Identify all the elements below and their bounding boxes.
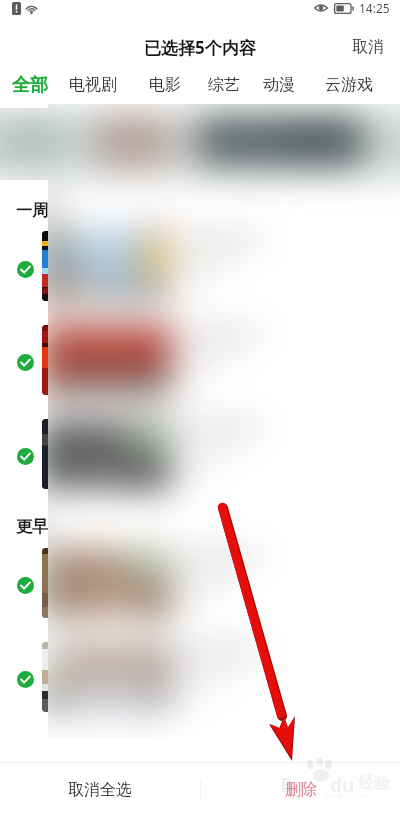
- staticText: 删除: [285, 780, 317, 800]
- staticText: 更早: [16, 517, 48, 537]
- staticText: jingyan.baidu.com: [290, 789, 368, 801]
- staticText: 经验: [358, 773, 390, 793]
- button[interactable]: 取消全选: [0, 763, 200, 816]
- button[interactable]: Selected: [17, 354, 34, 371]
- staticText: 一周内: [16, 201, 64, 221]
- button[interactable]: Selected: [17, 671, 34, 688]
- button[interactable]: Selected: [17, 261, 34, 278]
- staticText: 更早: [16, 517, 48, 537]
- staticText: 电影: [149, 75, 181, 95]
- button[interactable]: Selected: [17, 448, 34, 465]
- button[interactable]: Selected: [17, 671, 34, 688]
- button[interactable]: 取消: [336, 28, 400, 66]
- button[interactable]: 删除: [201, 763, 400, 816]
- button[interactable]: Selected: [17, 577, 34, 594]
- button[interactable]: Selected: [17, 671, 34, 688]
- staticText: 14:25: [359, 0, 390, 16]
- staticText: Ba: [280, 772, 305, 798]
- button[interactable]: 动漫: [253, 66, 305, 104]
- button[interactable]: Selected: [17, 261, 34, 278]
- button[interactable]: Selected: [17, 577, 34, 594]
- button[interactable]: 云游戏: [315, 66, 383, 104]
- button[interactable]: 综艺: [198, 66, 250, 104]
- button[interactable]: Selected: [17, 448, 34, 465]
- staticText: 综艺: [208, 75, 240, 95]
- button[interactable]: 电视剧: [59, 66, 127, 104]
- button[interactable]: Selected: [17, 354, 34, 371]
- staticText: 一周内: [16, 201, 64, 221]
- staticText: 更早: [16, 517, 48, 537]
- staticText: 全部: [12, 74, 48, 97]
- button[interactable]: 全部: [2, 66, 58, 104]
- staticText: 已选择5个内容: [144, 36, 256, 59]
- staticText: 取消全选: [68, 780, 132, 800]
- button[interactable]: Selected: [17, 261, 34, 278]
- staticText: du: [330, 772, 355, 798]
- staticText: 动漫: [263, 75, 295, 95]
- staticText: 一周内: [16, 201, 64, 221]
- staticText: 电视剧: [69, 75, 117, 95]
- staticText: 云游戏: [325, 75, 373, 95]
- staticText: 取消: [352, 37, 384, 57]
- button[interactable]: Selected: [17, 354, 34, 371]
- button[interactable]: Selected: [17, 577, 34, 594]
- button[interactable]: Selected: [17, 448, 34, 465]
- button[interactable]: 电影: [139, 66, 191, 104]
